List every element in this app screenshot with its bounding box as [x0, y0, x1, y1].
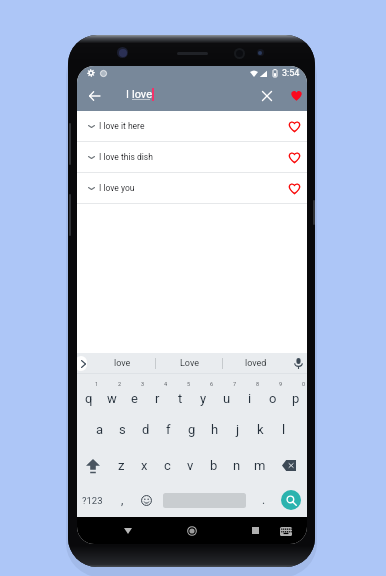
staticText: 8: [256, 381, 260, 387]
button[interactable]: 3: [123, 374, 146, 410]
button[interactable]: z: [109, 448, 133, 483]
staticText: 5: [187, 381, 191, 387]
button[interactable]: s: [111, 410, 134, 448]
button[interactable]: 1: [77, 374, 100, 410]
button[interactable]: Backspace: [271, 448, 307, 483]
button[interactable]: Switch keyboard: [273, 518, 299, 544]
button[interactable]: m: [248, 448, 271, 483]
staticText: d: [142, 422, 150, 437]
button[interactable]: 9: [261, 374, 284, 410]
button[interactable]: More suggestions: [77, 353, 89, 374]
staticText: loved: [245, 358, 267, 369]
staticText: I love this dish: [99, 152, 153, 162]
button[interactable]: love: [89, 353, 155, 374]
staticText: I love it here: [99, 121, 145, 131]
staticText: c: [164, 458, 171, 473]
button[interactable]: Hide keyboard: [113, 517, 143, 544]
button[interactable]: 0: [284, 374, 307, 410]
button[interactable]: f: [157, 410, 180, 448]
button[interactable]: x: [133, 448, 156, 483]
staticText: f: [166, 422, 171, 437]
button[interactable]: Voice input: [289, 353, 307, 374]
staticText: b: [210, 458, 218, 473]
button[interactable]: Space: [156, 483, 253, 517]
button[interactable]: I love this dish: [77, 142, 307, 172]
staticText: g: [188, 422, 196, 437]
button[interactable]: Back: [83, 80, 105, 111]
staticText: i: [248, 391, 252, 406]
button[interactable]: 6: [192, 374, 215, 410]
staticText: ?123: [82, 495, 103, 506]
button[interactable]: 8: [238, 374, 261, 410]
button[interactable]: v: [179, 448, 202, 483]
button[interactable]: k: [249, 410, 272, 448]
staticText: z: [118, 458, 125, 473]
button[interactable]: loved: [223, 353, 289, 374]
button[interactable]: 5: [169, 374, 192, 410]
staticText: q: [85, 391, 93, 406]
staticText: love: [114, 358, 131, 369]
staticText: y: [200, 391, 207, 406]
button[interactable]: 2: [100, 374, 123, 410]
button[interactable]: I love you: [77, 173, 307, 203]
button[interactable]: Clear search: [256, 85, 278, 107]
button[interactable]: a: [88, 410, 111, 448]
staticText: I: [126, 88, 132, 101]
staticText: Love: [180, 358, 199, 369]
button[interactable]: Shift: [77, 448, 109, 483]
staticText: p: [292, 391, 300, 406]
staticText: t: [178, 391, 183, 406]
button[interactable]: Search: [275, 483, 307, 517]
staticText: k: [257, 422, 264, 437]
staticText: u: [223, 391, 231, 406]
staticText: a: [96, 422, 104, 437]
staticText: 0: [302, 381, 306, 387]
button[interactable]: c: [156, 448, 179, 483]
staticText: 3:54: [282, 68, 300, 79]
button[interactable]: I love it here: [77, 111, 307, 141]
staticText: v: [187, 458, 194, 473]
button[interactable]: g: [180, 410, 203, 448]
button[interactable]: ,: [108, 483, 136, 517]
staticText: 4: [164, 381, 168, 387]
button[interactable]: Favorite: [285, 84, 307, 106]
button[interactable]: d: [134, 410, 157, 448]
staticText: r: [155, 391, 160, 406]
staticText: x: [141, 458, 148, 473]
staticText: 2: [118, 381, 122, 387]
staticText: s: [119, 422, 126, 437]
button[interactable]: Emoji: [136, 483, 156, 517]
staticText: e: [131, 391, 138, 406]
staticText: love: [132, 88, 152, 101]
staticText: o: [269, 391, 277, 406]
button[interactable]: Love: [156, 353, 222, 374]
staticText: 1: [95, 381, 99, 387]
button[interactable]: h: [203, 410, 226, 448]
button[interactable]: 7: [215, 374, 238, 410]
staticText: l: [282, 422, 286, 437]
staticText: ,: [121, 493, 124, 507]
staticText: 9: [279, 381, 283, 387]
button[interactable]: .: [253, 483, 275, 517]
button[interactable]: j: [226, 410, 249, 448]
staticText: I love you: [99, 183, 135, 193]
button[interactable]: Recents: [240, 517, 270, 544]
staticText: w: [107, 391, 117, 406]
staticText: 6: [210, 381, 214, 387]
button[interactable]: 4: [146, 374, 169, 410]
staticText: 7: [233, 381, 237, 387]
button[interactable]: l: [272, 410, 295, 448]
button[interactable]: ?123: [77, 483, 108, 517]
button[interactable]: n: [225, 448, 248, 483]
staticText: h: [211, 422, 219, 437]
staticText: j: [236, 422, 240, 437]
staticText: n: [233, 458, 241, 473]
staticText: .: [262, 493, 266, 507]
staticText: 3: [141, 381, 145, 387]
button[interactable]: Home: [177, 517, 207, 544]
button[interactable]: b: [202, 448, 225, 483]
staticText: m: [254, 458, 266, 473]
